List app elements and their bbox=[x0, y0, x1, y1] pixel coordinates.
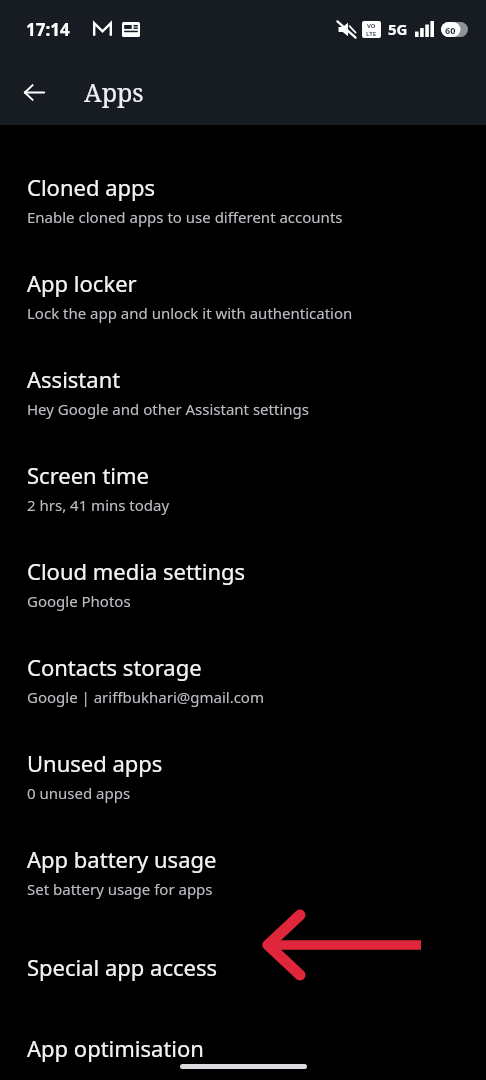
button[interactable]: Back bbox=[12, 70, 56, 114]
button[interactable]: Unused apps bbox=[0, 727, 486, 823]
staticText: Cloned apps bbox=[27, 172, 156, 202]
staticText: Special app access bbox=[27, 952, 218, 982]
staticText: Google | ariffbukhari@gmail.com bbox=[27, 687, 264, 707]
button[interactable]: App locker bbox=[0, 247, 486, 343]
staticText: App battery usage bbox=[27, 844, 217, 874]
staticText: Screen time bbox=[27, 460, 150, 490]
staticText: Hey Google and other Assistant settings bbox=[27, 399, 309, 419]
staticText: 2 hrs, 41 mins today bbox=[27, 495, 170, 515]
button[interactable]: Cloud media settings bbox=[0, 535, 486, 631]
staticText: 17:14 bbox=[26, 18, 70, 41]
staticText: Lock the app and unlock it with authenti… bbox=[27, 303, 353, 323]
button[interactable]: App battery usage bbox=[0, 823, 486, 919]
button[interactable]: Contacts storage bbox=[0, 631, 486, 727]
staticText: 60 bbox=[445, 24, 456, 36]
staticText: Set battery usage for apps bbox=[27, 879, 213, 899]
staticText: 0 unused apps bbox=[27, 783, 131, 803]
button[interactable]: App optimisation bbox=[0, 1015, 486, 1080]
staticText: Contacts storage bbox=[27, 652, 202, 682]
button[interactable]: Cloned apps bbox=[0, 151, 486, 247]
staticText: Apps bbox=[84, 75, 144, 109]
button[interactable]: Assistant bbox=[0, 343, 486, 439]
staticText: Cloud media settings bbox=[27, 556, 246, 586]
staticText: Google Photos bbox=[27, 591, 131, 611]
staticText: App optimisation bbox=[27, 1033, 204, 1063]
staticText: VO bbox=[367, 22, 376, 30]
button[interactable]: Screen time bbox=[0, 439, 486, 535]
staticText: Assistant bbox=[27, 364, 121, 394]
staticText: Unused apps bbox=[27, 748, 163, 778]
staticText: 5G bbox=[388, 19, 408, 39]
staticText: App locker bbox=[27, 268, 137, 298]
staticText: Enable cloned apps to use different acco… bbox=[27, 207, 343, 227]
button[interactable]: Special app access bbox=[0, 919, 486, 1015]
staticText: LTE bbox=[366, 30, 377, 38]
